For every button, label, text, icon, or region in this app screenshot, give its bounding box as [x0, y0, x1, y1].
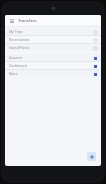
- staticText: Dashboard: [9, 63, 93, 68]
- button[interactable]: Add: [87, 152, 96, 161]
- staticText: My Trips: [9, 29, 93, 34]
- staticText: Account: [9, 55, 93, 60]
- button[interactable]: Navigate up: [8, 17, 15, 24]
- staticText: Transfers: [18, 18, 37, 24]
- staticText: Reservations: [9, 37, 93, 42]
- button[interactable]: More: [5, 70, 101, 77]
- button[interactable]: Account: [5, 54, 101, 61]
- button[interactable]: Reservations: [5, 36, 101, 43]
- button[interactable]: My Trips: [5, 28, 101, 35]
- staticText: More: [9, 71, 93, 76]
- button[interactable]: Saved Places: [5, 44, 101, 51]
- staticText: Saved Places: [9, 45, 93, 50]
- button[interactable]: Dashboard: [5, 62, 101, 69]
